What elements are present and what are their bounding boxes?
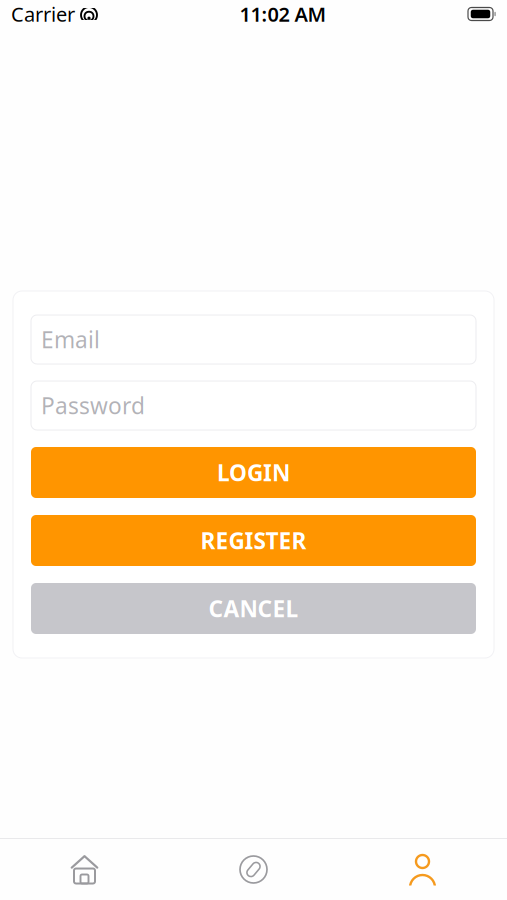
button[interactable]: CANCEL	[31, 583, 476, 634]
staticText: CANCEL	[208, 593, 298, 623]
button[interactable]: LOGIN	[31, 447, 476, 498]
staticText: Email	[41, 324, 100, 354]
staticText: Carrier	[11, 1, 75, 27]
button[interactable]: Email	[31, 315, 476, 364]
button[interactable]: Home	[0, 839, 169, 900]
button[interactable]: Password	[31, 381, 476, 430]
staticText: LOGIN	[217, 457, 290, 487]
button[interactable]: Profile	[338, 839, 507, 900]
staticText: 11:02 AM	[239, 1, 326, 27]
button[interactable]: REGISTER	[31, 515, 476, 566]
button[interactable]: Explore	[169, 839, 338, 900]
staticText: REGISTER	[200, 525, 306, 555]
staticText: Password	[41, 390, 145, 420]
